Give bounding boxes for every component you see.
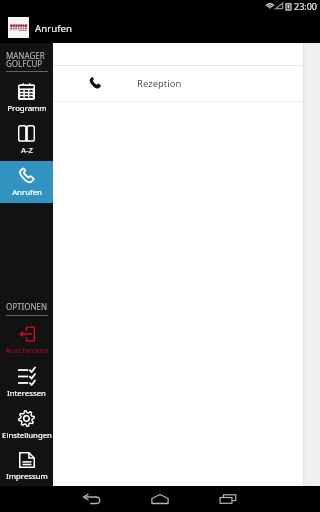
button[interactable]: Rezeption [53, 66, 303, 101]
button[interactable]: Einstellungen [0, 404, 53, 446]
button[interactable]: Home [126, 486, 194, 512]
staticText: Impressum [6, 471, 48, 482]
staticText: GOLFCUP [6, 58, 43, 69]
staticText: Programm [7, 103, 47, 114]
staticText: A-Z [21, 145, 33, 156]
button[interactable]: Recent apps [194, 486, 262, 512]
staticText: Anrufen [35, 22, 72, 35]
staticText: Auschecken [5, 345, 49, 356]
button[interactable]: A-Z [0, 119, 53, 161]
staticText: Rezeption [137, 77, 182, 90]
button[interactable]: Interessen [0, 362, 53, 404]
staticText: Einstellungen [2, 430, 52, 441]
button[interactable]: Open navigation drawer [8, 17, 29, 38]
staticText: Anrufen [12, 187, 42, 198]
staticText: OPTIONEN [6, 301, 48, 312]
staticText: MANAGER [6, 50, 45, 61]
button[interactable]: Auschecken [0, 320, 53, 362]
staticText: 23:00 [294, 0, 318, 12]
button[interactable]: Impressum [0, 446, 53, 488]
staticText: Interessen [7, 388, 46, 399]
button[interactable]: Anrufen [0, 161, 53, 203]
button[interactable]: Back [58, 486, 126, 512]
button[interactable]: Programm [0, 77, 53, 119]
